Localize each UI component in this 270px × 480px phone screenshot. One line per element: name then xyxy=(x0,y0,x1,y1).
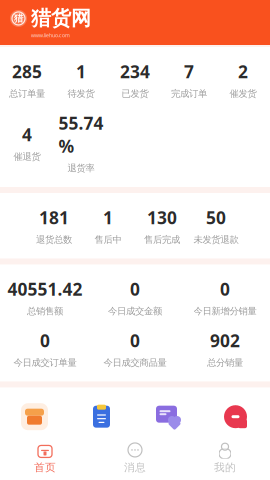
staticText: 完成订单 xyxy=(171,88,207,99)
staticText: 50 xyxy=(206,206,226,229)
button[interactable]: 店 xyxy=(202,459,269,480)
button[interactable]: 店铺会员 xyxy=(202,401,269,449)
staticText: www.liehuo.com xyxy=(31,32,70,39)
staticText: 总订单量 xyxy=(9,88,45,99)
staticText: 181 xyxy=(39,206,69,229)
staticText: 已发货 xyxy=(121,88,148,99)
staticText: 7 xyxy=(184,60,194,83)
staticText: 4 xyxy=(22,123,32,146)
staticText: 我的 xyxy=(214,461,236,474)
staticText: 今日新增分销量 xyxy=(193,305,256,317)
staticText: 总销售额 xyxy=(27,305,63,317)
staticText: 售后中 xyxy=(94,234,121,245)
staticText: 店 xyxy=(228,466,243,480)
staticText: 今日成交订单量 xyxy=(13,357,76,368)
staticText: 40551.42 xyxy=(7,277,82,300)
staticText: 55.74% xyxy=(58,111,103,157)
button[interactable]: 冻结资金 xyxy=(68,459,135,480)
button[interactable]: 消息 xyxy=(90,436,180,480)
staticText: 130 xyxy=(147,206,177,229)
staticText: 退货总数 xyxy=(36,234,72,245)
staticText: 未发货退款 xyxy=(193,234,238,245)
staticText: 今日成交商品量 xyxy=(103,357,166,368)
staticText: 总分销量 xyxy=(207,357,243,368)
staticText: 催发货 xyxy=(229,88,256,99)
button[interactable]: 代发售后 xyxy=(135,401,202,449)
button[interactable]: 我的 xyxy=(180,436,270,480)
staticText: 猎 xyxy=(14,13,23,24)
staticText: 首页 xyxy=(34,461,56,474)
staticText: 店铺商品 xyxy=(16,438,52,449)
staticText: 店铺会员 xyxy=(217,438,253,449)
staticText: 今日成交金额 xyxy=(108,305,162,317)
button[interactable]: 账号资金 xyxy=(135,459,202,480)
staticText: 1 xyxy=(103,206,113,229)
staticText: 0 xyxy=(220,277,230,300)
staticText: 1 xyxy=(76,60,86,83)
button[interactable]: 店铺关注 xyxy=(1,459,68,480)
staticText: 售后完成 xyxy=(144,234,180,245)
staticText: 2 xyxy=(238,60,248,83)
button[interactable]: 首页 xyxy=(0,436,90,480)
button[interactable]: 店铺商品 xyxy=(1,401,68,449)
staticText: 285 xyxy=(12,60,42,83)
staticText: 234 xyxy=(120,60,150,83)
staticText: 催退货 xyxy=(13,151,40,162)
staticText: 0 xyxy=(130,277,140,300)
staticText: 0 xyxy=(130,329,140,352)
staticText: 902 xyxy=(210,329,240,352)
staticText: 待发货 xyxy=(67,88,94,99)
staticText: 退货率 xyxy=(67,162,94,174)
staticText: 消息 xyxy=(124,461,146,474)
button[interactable]: 代发订单 xyxy=(68,401,135,449)
staticText: 0 xyxy=(40,329,50,352)
staticText: 猎货网 xyxy=(31,6,91,31)
